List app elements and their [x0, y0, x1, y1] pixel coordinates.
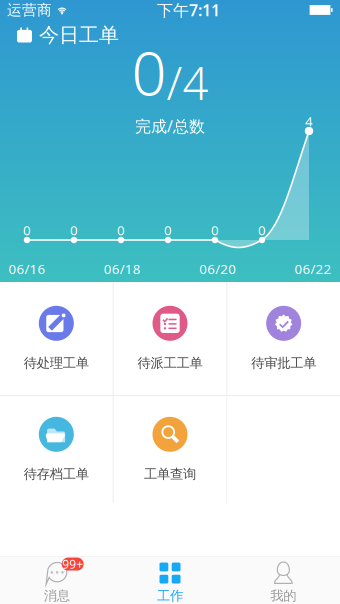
staticText: 消息	[44, 588, 70, 604]
staticText: 今日工单	[39, 23, 119, 47]
staticText: 0	[23, 221, 31, 239]
staticText: 0	[258, 221, 266, 239]
staticText: 工作	[157, 588, 183, 604]
staticText: 0	[131, 31, 166, 112]
button[interactable]: 99+	[0, 557, 113, 604]
staticText: 完成/总数	[135, 115, 205, 137]
staticText: 0	[117, 221, 125, 239]
button[interactable]: 待审批工单	[227, 282, 340, 395]
staticText: 06/16	[8, 260, 45, 278]
staticText: 工单查询	[144, 466, 196, 482]
staticText: 待审批工单	[251, 355, 316, 371]
staticText: 0	[70, 221, 78, 239]
staticText: 0	[211, 221, 219, 239]
staticText: 0	[164, 221, 172, 239]
staticText: 待派工工单	[137, 355, 202, 371]
staticText: 4	[305, 112, 313, 130]
button[interactable]: 我的	[227, 557, 340, 604]
staticText: 我的	[270, 588, 296, 604]
button[interactable]: 工单查询	[114, 396, 226, 503]
staticText: 运营商	[7, 1, 52, 19]
button[interactable]: 工作	[113, 557, 227, 604]
staticText: /4	[166, 52, 208, 112]
button[interactable]: 待处理工单	[0, 282, 113, 395]
staticText: 06/18	[104, 260, 141, 278]
staticText: 06/22	[294, 260, 331, 278]
button[interactable]: 待存档工单	[0, 396, 113, 503]
staticText: 下午7:11	[157, 0, 220, 21]
staticText: 待存档工单	[24, 466, 89, 482]
staticText: 06/20	[199, 260, 236, 278]
button[interactable]: 待派工工单	[114, 282, 226, 395]
staticText: 99+	[62, 556, 83, 572]
staticText: 待处理工单	[24, 355, 89, 371]
